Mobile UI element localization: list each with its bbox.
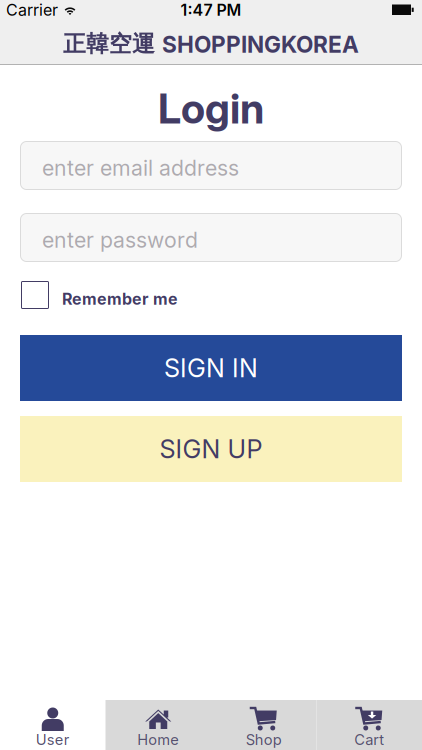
staticText: Cart xyxy=(354,731,384,748)
button[interactable]: enter password xyxy=(20,213,402,262)
staticText: Shop xyxy=(246,731,282,748)
button[interactable]: User xyxy=(0,700,105,750)
button[interactable]: Home xyxy=(105,700,211,750)
staticText: enter password xyxy=(42,227,198,253)
button[interactable]: Cart xyxy=(316,700,422,750)
staticText: Carrier xyxy=(6,1,58,19)
staticText: enter email address xyxy=(42,155,239,181)
button[interactable]: Shop xyxy=(211,700,316,750)
staticText: Login xyxy=(158,84,264,133)
staticText: SIGN IN xyxy=(164,353,258,383)
staticText: Remember me xyxy=(62,290,178,308)
staticText: 1:47 PM xyxy=(180,1,241,19)
staticText: SIGN UP xyxy=(159,434,262,464)
button[interactable]: Remember me xyxy=(21,281,178,309)
button[interactable]: SIGN IN xyxy=(20,335,402,401)
staticText: User xyxy=(36,731,70,748)
staticText: Home xyxy=(137,731,179,748)
staticText: 正韓空運 SHOPPINGKOREA xyxy=(63,30,359,58)
button[interactable]: SIGN UP xyxy=(20,416,402,482)
button[interactable]: enter email address xyxy=(20,141,402,190)
